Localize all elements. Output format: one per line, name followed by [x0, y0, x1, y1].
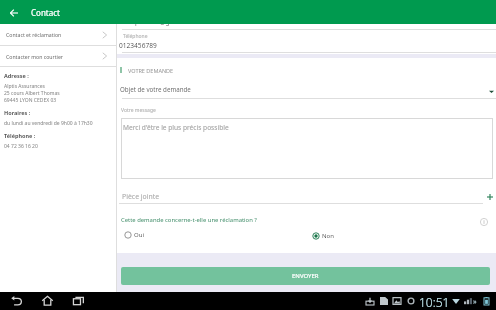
button[interactable]: Home [38, 291, 56, 309]
button[interactable]: Ouvrir la liste [485, 85, 496, 97]
staticText: Téléphone [123, 33, 148, 40]
staticText: 04 72 36 16 20 [4, 143, 38, 150]
staticText: 0123456789 [119, 41, 157, 50]
button[interactable]: Information [477, 215, 491, 229]
staticText: VOTRE DEMANDE [128, 67, 174, 74]
button[interactable]: Oui [122, 229, 144, 241]
other: Document [379, 296, 388, 305]
staticText: du lundi au vendredi de 9h00 à 17h30 [4, 120, 93, 127]
staticText: ENVOYER [292, 272, 319, 280]
other: Screenshot [392, 296, 401, 305]
button[interactable]: Back [2, 1, 25, 24]
other: Signal [463, 296, 472, 305]
staticText: Adresse : [4, 72, 29, 79]
staticText: Non [322, 232, 334, 240]
staticText: Pièce jointe [122, 192, 160, 201]
staticText: Merci d'être le plus précis possible [123, 123, 229, 132]
staticText: 10:51 [419, 294, 450, 310]
button[interactable]: Contact et réclamation [0, 24, 116, 45]
staticText: 25 cours Albert Thomas [4, 90, 60, 97]
staticText: Contact [31, 7, 60, 18]
button[interactable]: Contacter mon courtier [0, 46, 116, 66]
staticText: » [473, 297, 477, 307]
staticText: Alptis Assurances [4, 83, 45, 90]
staticText: Contact et réclamation [6, 31, 62, 38]
staticText: Oui [134, 231, 144, 239]
button[interactable]: Ajouter une pièce jointe [483, 190, 496, 204]
staticText: Cette demande concerne-t-elle une réclam… [121, 216, 257, 224]
staticText: 69445 LYON CEDEX 03 [4, 97, 57, 104]
staticText: nom.prenom@gmail.com [119, 17, 198, 26]
button[interactable]: Back [7, 291, 25, 309]
other: Download [365, 296, 374, 305]
button[interactable]: ENVOYER [121, 267, 490, 285]
staticText: Horaires : [4, 109, 31, 116]
staticText: Votre message [121, 107, 156, 114]
staticText: Objet de votre demande [120, 85, 191, 93]
other: Sync [406, 296, 415, 305]
button[interactable]: Non [310, 230, 334, 242]
staticText: Contacter mon courtier [6, 53, 63, 60]
button[interactable]: Recents [69, 291, 87, 309]
other: Battery [483, 296, 489, 305]
staticText: Téléphone : [4, 132, 36, 139]
other: Wi-Fi [451, 296, 460, 305]
